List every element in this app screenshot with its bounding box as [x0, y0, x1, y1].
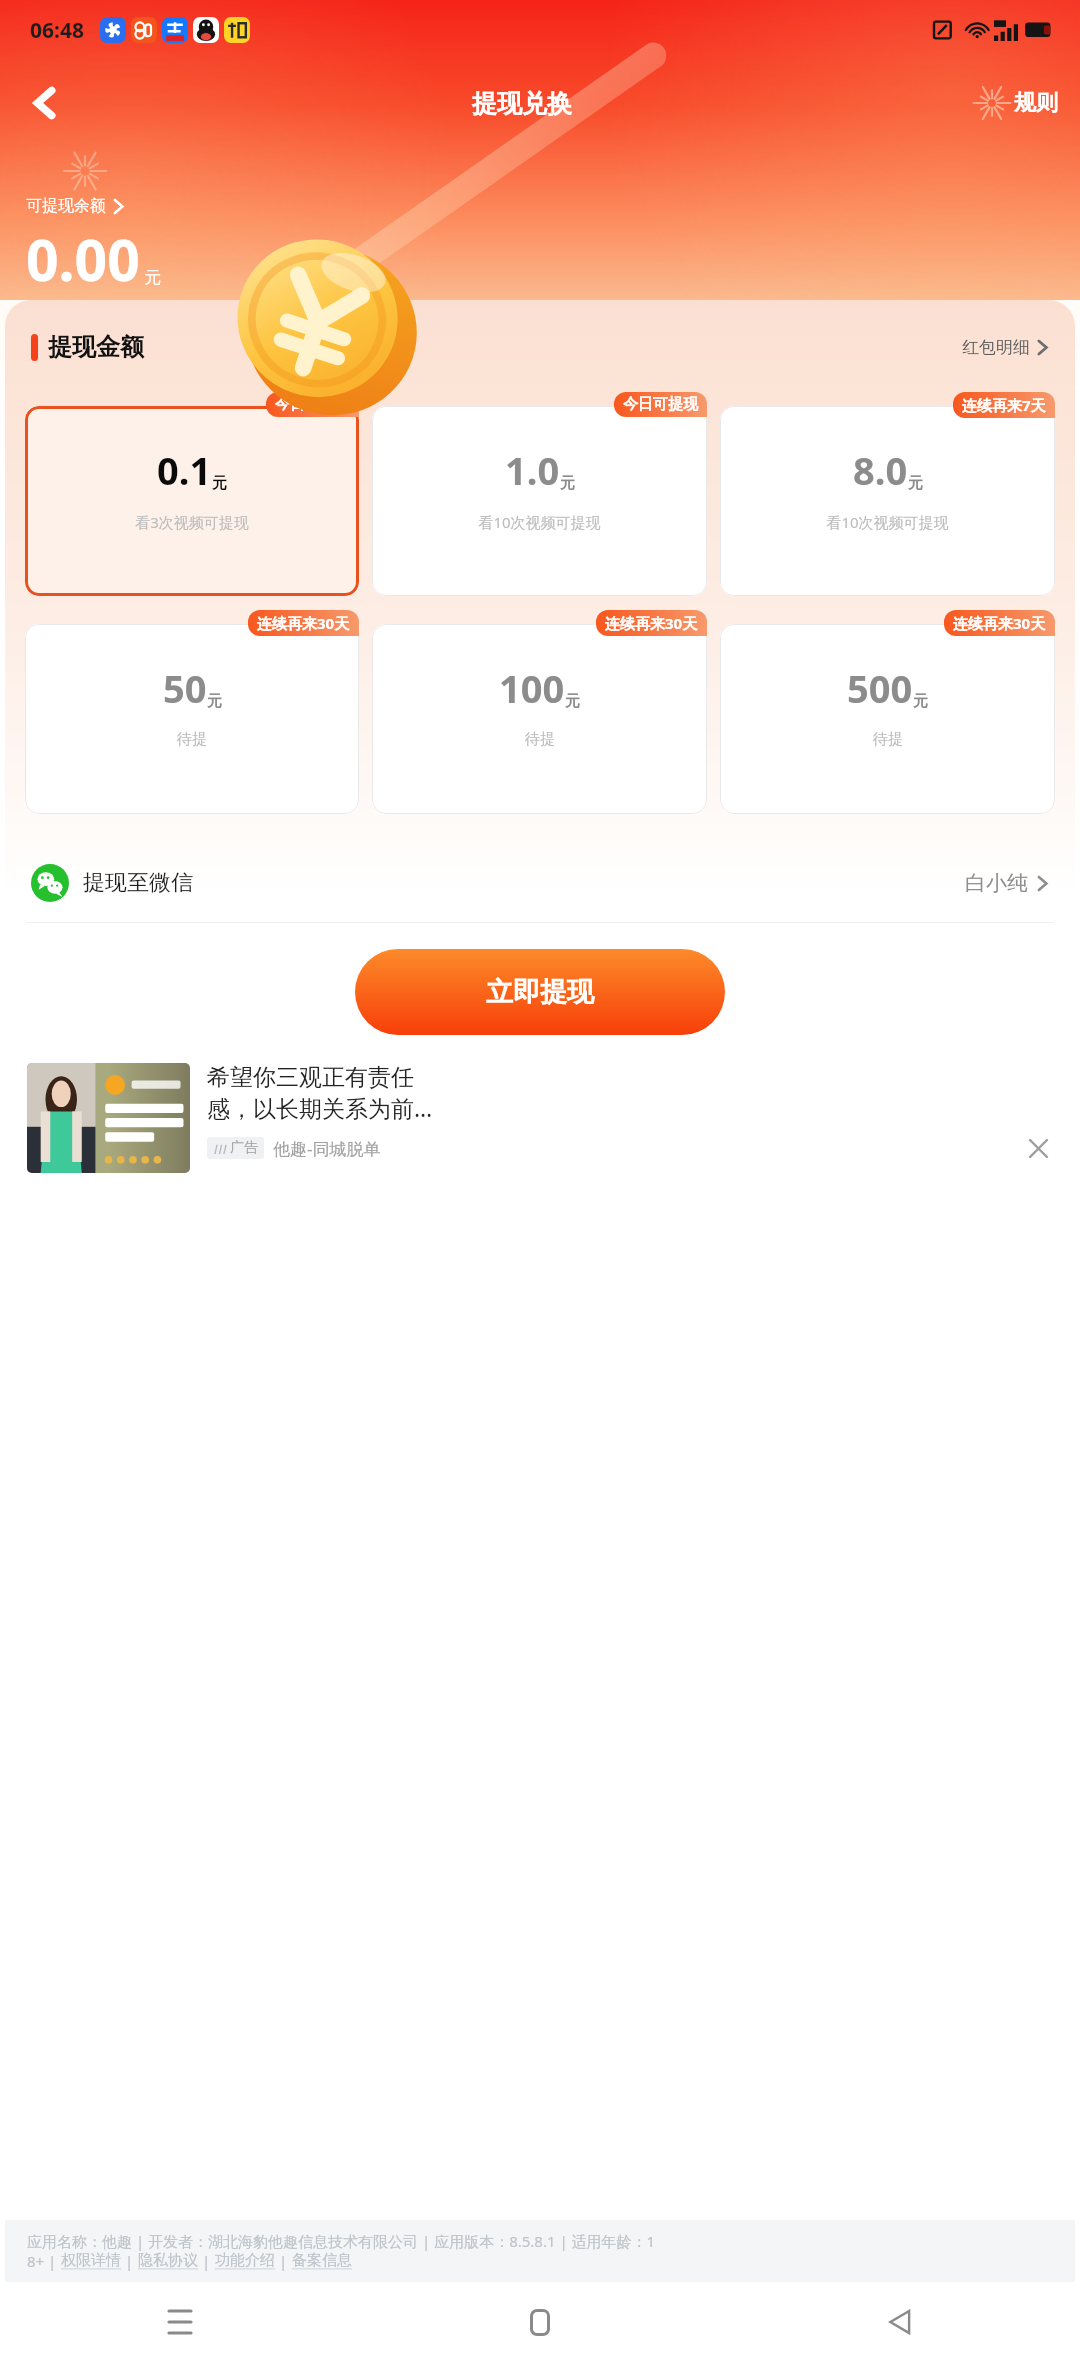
staticText: 立即提现	[486, 975, 594, 1009]
staticText: 8+ |	[27, 2251, 61, 2271]
staticText: 元	[144, 267, 161, 288]
staticText: 连续再来30天	[257, 613, 350, 633]
button[interactable]: 立即提现	[355, 949, 725, 1035]
staticText: 看3次视频可提现	[135, 512, 249, 532]
staticText: 0.1	[157, 444, 212, 496]
staticText: 应用名称：他趣 | 开发者：湖北海豹他趣信息技术有限公司 | 应用版本：8.5.…	[27, 2231, 656, 2251]
staticText: 50	[163, 662, 207, 714]
staticText: 可提现余额	[26, 196, 106, 216]
button[interactable]: 500	[720, 624, 1055, 814]
staticText: 100	[499, 662, 565, 714]
staticText: 0.00	[26, 220, 140, 298]
staticText: 看10次视频可提现	[826, 512, 949, 532]
staticText: 连续再来30天	[953, 613, 1046, 633]
button[interactable]: Close ad	[1023, 1133, 1053, 1163]
staticText: 1.0	[505, 444, 560, 496]
staticText: |	[198, 2251, 215, 2271]
staticText: 看10次视频可提现	[478, 512, 601, 532]
button[interactable]: 功能介绍	[215, 2251, 275, 2270]
staticText: 连续再来30天	[605, 613, 698, 633]
staticText: 元	[908, 474, 923, 493]
staticText: 元	[913, 692, 928, 711]
staticText: 提现兑换	[472, 88, 572, 119]
button[interactable]: Back	[873, 2295, 927, 2349]
button[interactable]: Home	[513, 2295, 567, 2349]
staticText: 元	[565, 692, 580, 711]
staticText: 希望你三观正有责任 感，以长期关系为前…	[207, 1063, 433, 1124]
staticText: 06:48	[30, 16, 84, 45]
staticText: 广告	[230, 1139, 258, 1157]
button[interactable]: Recents	[153, 2295, 207, 2349]
button[interactable]: 红包明细	[962, 337, 1049, 358]
button[interactable]: 隐私协议	[138, 2251, 198, 2270]
button[interactable]: 100	[372, 624, 707, 814]
button[interactable]: 50	[25, 624, 359, 814]
staticText: 提现至微信	[83, 869, 193, 897]
button[interactable]: 权限详情	[61, 2251, 121, 2270]
button[interactable]: 1.0	[372, 406, 707, 596]
staticText: |	[275, 2251, 292, 2271]
button[interactable]: Back	[18, 76, 72, 130]
button[interactable]: 希望你三观正有责任 感，以长期关系为前…	[27, 1063, 1053, 1173]
button[interactable]: 规则	[972, 83, 1058, 123]
button[interactable]: 0.1	[25, 406, 359, 596]
staticText: 今日可提现	[275, 395, 350, 414]
staticText: 500	[847, 662, 913, 714]
staticText: 今日可提现	[623, 395, 698, 414]
staticText: 待提	[525, 730, 555, 749]
staticText: 元	[212, 474, 227, 493]
staticText: 元	[560, 474, 575, 493]
staticText: 他趣-同城脱单	[273, 1137, 381, 1160]
staticText: 白小纯	[965, 870, 1028, 896]
button[interactable]: 8.0	[720, 406, 1055, 596]
button[interactable]: 可提现余额	[26, 196, 125, 216]
button[interactable]: 提现至微信	[5, 844, 1075, 922]
staticText: 连续再来7天	[962, 395, 1046, 415]
staticText: 提现金额	[48, 332, 144, 362]
button[interactable]: 备案信息	[292, 2251, 352, 2270]
staticText: 元	[207, 692, 222, 711]
staticText: 待提	[177, 730, 207, 749]
staticText: 8.0	[853, 444, 908, 496]
staticText: 规则	[1014, 89, 1058, 117]
staticText: 待提	[873, 730, 903, 749]
staticText: 红包明细	[962, 337, 1030, 358]
staticText: |	[121, 2251, 138, 2271]
